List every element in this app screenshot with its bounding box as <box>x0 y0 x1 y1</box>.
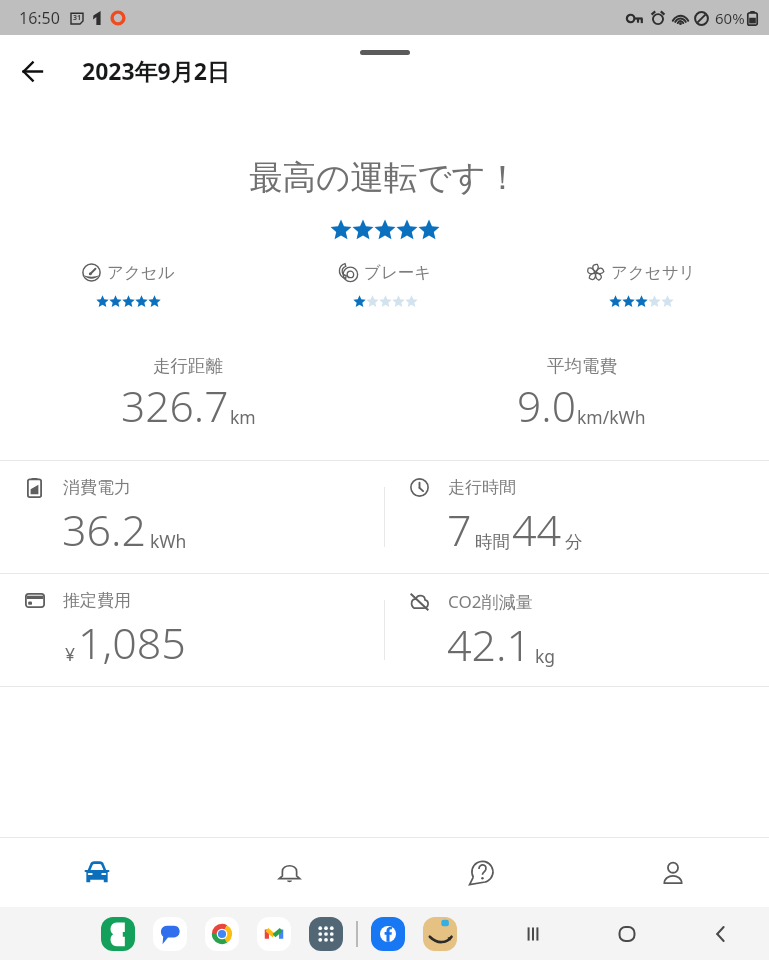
staticText: アクセサリ <box>611 262 696 283</box>
staticText: ¥ <box>65 642 76 666</box>
staticText: 2023年9月2日 <box>82 55 230 86</box>
staticText: 16:50 <box>19 7 60 29</box>
button[interactable]: Apps <box>309 917 343 951</box>
staticText: 分 <box>565 531 583 553</box>
button[interactable]: Chrome <box>205 917 239 951</box>
staticText: km <box>230 405 256 429</box>
button[interactable]: 走行時間 <box>385 461 769 573</box>
button[interactable]: Amazon <box>423 917 457 951</box>
staticText: CO2削減量 <box>448 590 533 613</box>
button[interactable]: 消費電力 <box>0 461 384 573</box>
staticText: 最高の運転です！ <box>249 157 520 199</box>
staticText: 1,085 <box>78 613 186 672</box>
button[interactable]: Facebook <box>371 917 405 951</box>
staticText: kWh <box>150 529 187 553</box>
staticText: アクセル <box>107 262 175 283</box>
staticText: 走行距離 <box>153 355 223 377</box>
staticText: 60% <box>715 8 745 28</box>
button[interactable]: Messages <box>153 917 187 951</box>
staticText: 消費電力 <box>63 477 131 498</box>
staticText: 31 <box>73 13 82 23</box>
staticText: 走行時間 <box>448 477 516 498</box>
button[interactable]: Recent apps <box>516 917 550 951</box>
staticText: 44 <box>512 500 562 559</box>
button[interactable]: 推定費用 <box>0 574 384 686</box>
button[interactable]: Phone <box>101 917 135 951</box>
button[interactable]: Vehicle <box>0 838 193 907</box>
button[interactable]: Back <box>704 917 738 951</box>
button[interactable]: Help <box>385 838 577 907</box>
button[interactable]: アクセル <box>0 262 257 308</box>
button[interactable]: Home <box>610 917 644 951</box>
staticText: km/kWh <box>577 405 646 429</box>
staticText: 42.1 <box>447 615 532 674</box>
staticText: ブレーキ <box>364 262 432 283</box>
staticText: 9.0 <box>517 377 576 435</box>
staticText: 326.7 <box>121 377 229 435</box>
button[interactable]: Notifications <box>193 838 385 907</box>
button[interactable]: Account <box>577 838 769 907</box>
staticText: 推定費用 <box>63 590 131 611</box>
staticText: kg <box>535 644 556 668</box>
staticText: 36.2 <box>62 500 147 559</box>
button[interactable]: アクセサリ <box>513 262 769 308</box>
button[interactable]: Gmail <box>257 917 291 951</box>
staticText: 7 <box>447 500 472 559</box>
staticText: 時間 <box>475 531 510 553</box>
button[interactable]: Back <box>10 49 54 93</box>
button[interactable]: ブレーキ <box>257 262 513 308</box>
button[interactable]: CO2削減量 <box>385 574 769 686</box>
staticText: 平均電費 <box>547 355 617 377</box>
